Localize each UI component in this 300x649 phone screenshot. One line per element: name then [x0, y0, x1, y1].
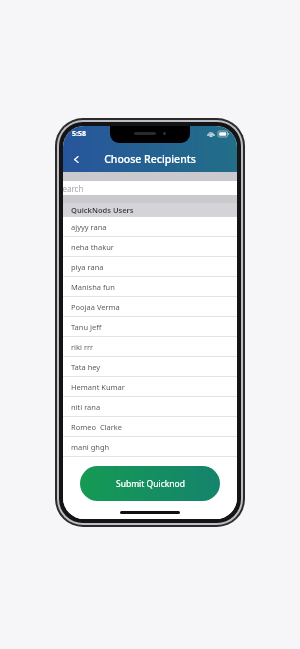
button[interactable]: Back [63, 146, 89, 172]
button[interactable]: Tata hey [63, 357, 237, 377]
button[interactable]: Search [63, 181, 237, 195]
button[interactable]: Romeo Clarke [63, 417, 237, 437]
button[interactable]: Poojaa Verma [63, 297, 237, 317]
staticText: QuickNods Users [71, 205, 134, 215]
staticText: 5:58 [72, 129, 86, 139]
staticText: Submit Quicknod [116, 478, 185, 490]
staticText: Tata hey [71, 362, 101, 372]
staticText: piya rana [71, 262, 104, 272]
staticText: ajyyy rana [71, 222, 107, 232]
button[interactable]: neha thakur [63, 237, 237, 257]
staticText: Choose Recipients [104, 152, 196, 166]
staticText: Manisha fun [71, 282, 115, 292]
staticText: Hemant Kumar [71, 382, 125, 392]
button[interactable]: piya rana [63, 257, 237, 277]
staticText: mani ghgh [71, 442, 110, 452]
button[interactable]: mani ghgh [63, 437, 237, 457]
staticText: niti rana [71, 402, 101, 412]
button[interactable]: Hemant Kumar [63, 377, 237, 397]
button[interactable]: Tanu Jeff [63, 317, 237, 337]
staticText: Tanu Jeff [71, 322, 102, 332]
button[interactable]: riki rrr [63, 337, 237, 357]
staticText: riki rrr [71, 342, 94, 352]
button[interactable]: Submit Quicknod [80, 466, 220, 501]
button[interactable]: Manisha fun [63, 277, 237, 297]
button[interactable]: ajyyy rana [63, 217, 237, 237]
staticText: Poojaa Verma [71, 302, 120, 312]
staticText: Romeo Clarke [71, 422, 123, 432]
button[interactable]: niti rana [63, 397, 237, 417]
staticText: Search [63, 183, 84, 194]
staticText: neha thakur [71, 242, 114, 252]
